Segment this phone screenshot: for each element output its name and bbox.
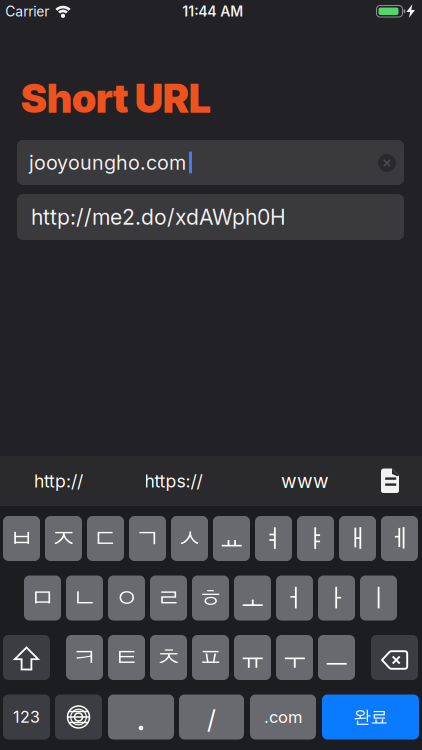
staticText: ㅁ — [30, 582, 55, 614]
staticText: ㅕ — [261, 522, 286, 555]
staticText: ㅓ — [282, 582, 307, 614]
button[interactable]: ㅇ — [108, 575, 145, 620]
button[interactable]: Next keyboard — [55, 694, 102, 739]
button[interactable]: www — [260, 456, 350, 506]
button[interactable]: ㅣ — [360, 575, 397, 620]
button[interactable]: ㅐ — [339, 516, 376, 561]
button[interactable]: ㅌ — [108, 635, 145, 680]
button[interactable]: ㅋ — [66, 635, 103, 680]
button[interactable]: Delete — [371, 635, 418, 680]
staticText: ㅇ — [114, 582, 139, 614]
staticText: http://me2.do/xdAWph0H — [31, 204, 286, 230]
staticText: ㄴ — [72, 582, 97, 614]
staticText: Carrier — [5, 3, 49, 20]
button[interactable]: 완료 — [322, 694, 419, 739]
button[interactable]: ㅎ — [192, 575, 229, 620]
button[interactable]: ㅊ — [150, 635, 187, 680]
button[interactable]: ㄱ — [129, 516, 166, 561]
staticText: ㅏ — [324, 582, 349, 614]
staticText: ㅍ — [198, 641, 223, 674]
staticText: ㄱ — [135, 522, 160, 555]
button[interactable]: ㅏ — [318, 575, 355, 620]
button[interactable]: ㅔ — [381, 516, 418, 561]
staticText: ㄷ — [93, 522, 118, 555]
button[interactable]: http:// — [8, 456, 108, 506]
staticText: ㄹ — [156, 582, 181, 614]
staticText: ㅋ — [72, 641, 97, 674]
staticText: ㅗ — [240, 582, 265, 614]
button[interactable]: ㅁ — [24, 575, 61, 620]
staticText: ㅡ — [324, 641, 349, 674]
button[interactable]: Shift — [3, 635, 50, 680]
staticText: ㅔ — [387, 522, 412, 555]
button[interactable]: ㄴ — [66, 575, 103, 620]
button[interactable]: ㅑ — [297, 516, 334, 561]
staticText: ㅊ — [156, 641, 181, 674]
button[interactable]: ㅓ — [276, 575, 313, 620]
button[interactable]: https:// — [118, 456, 228, 506]
button[interactable]: ㅅ — [171, 516, 208, 561]
button[interactable]: Period — [108, 694, 174, 739]
staticText: https:// — [144, 470, 202, 492]
button[interactable]: ㅠ — [234, 635, 271, 680]
staticText: Short URL — [21, 74, 211, 122]
button[interactable]: ㄹ — [150, 575, 187, 620]
button[interactable]: Slash — [179, 694, 244, 739]
staticText: 11:44 AM — [182, 3, 243, 20]
staticText: ㅂ — [9, 522, 34, 555]
button[interactable]: jooyoungho.com — [17, 140, 404, 185]
button[interactable]: ㅕ — [255, 516, 292, 561]
staticText: ㅅ — [177, 522, 202, 555]
staticText: ㅎ — [198, 582, 223, 614]
staticText: http:// — [34, 470, 83, 492]
staticText: ㅈ — [51, 522, 76, 555]
staticText: .com — [264, 707, 302, 727]
staticText: ㅜ — [282, 641, 307, 674]
staticText: ㅛ — [219, 522, 244, 555]
button[interactable]: ㅍ — [192, 635, 229, 680]
button[interactable]: ㅛ — [213, 516, 250, 561]
staticText: / — [207, 704, 216, 735]
button[interactable]: ㅜ — [276, 635, 313, 680]
button[interactable]: ㅡ — [318, 635, 355, 680]
staticText: jooyoungho.com — [29, 151, 186, 174]
button[interactable]: .com — [250, 694, 316, 739]
staticText: ㅐ — [345, 522, 370, 555]
button[interactable]: ㅗ — [234, 575, 271, 620]
staticText: ㅑ — [303, 522, 328, 555]
button[interactable]: http://me2.do/xdAWph0H — [17, 194, 404, 240]
staticText: 123 — [13, 707, 40, 727]
button[interactable]: 123 — [3, 694, 50, 739]
button[interactable]: ㅈ — [45, 516, 82, 561]
staticText: ㅠ — [240, 641, 265, 674]
staticText: www — [281, 469, 329, 493]
staticText: ㅣ — [366, 582, 391, 614]
staticText: 완료 — [353, 706, 387, 728]
button[interactable]: ㅂ — [3, 516, 40, 561]
button[interactable]: ㄷ — [87, 516, 124, 561]
button[interactable]: Clear text — [378, 154, 396, 172]
staticText: ㅌ — [114, 641, 139, 674]
button[interactable]: Paste document — [370, 455, 410, 505]
